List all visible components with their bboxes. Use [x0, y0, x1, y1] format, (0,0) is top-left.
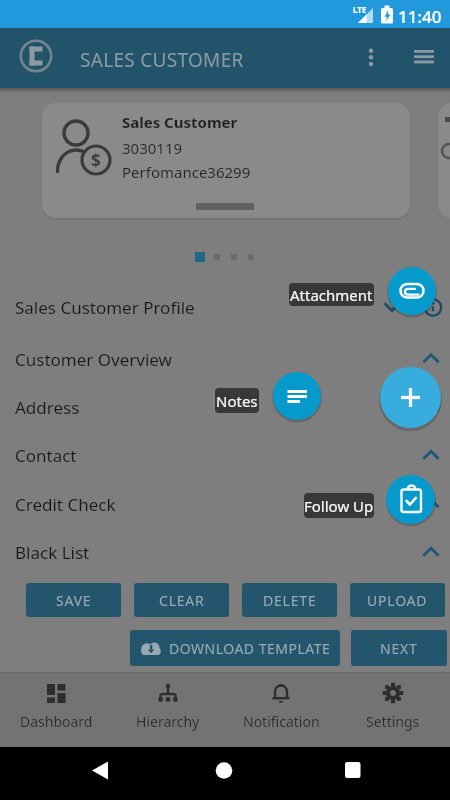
staticText: Customer Overview — [15, 348, 172, 371]
button[interactable]: Follow Up — [304, 493, 374, 518]
staticText: Hierarchy — [136, 712, 200, 731]
staticText: UPLOAD — [367, 591, 428, 610]
staticText: DOWNLOAD TEMPLATE — [169, 639, 331, 658]
staticText: Notification — [243, 712, 320, 731]
staticText: Settings — [366, 712, 420, 731]
button[interactable] — [333, 752, 373, 792]
button[interactable]: Notes — [215, 388, 259, 413]
button[interactable]: Dashboard — [0, 672, 112, 747]
button[interactable] — [358, 40, 384, 76]
button[interactable]: Contact — [0, 431, 450, 479]
staticText: Black List — [15, 541, 90, 564]
button[interactable]: Address — [0, 383, 450, 431]
staticText: Credit Check — [15, 493, 116, 516]
staticText: Perfomance36299 — [122, 162, 251, 182]
staticText: Attachment — [290, 285, 373, 305]
button[interactable]: DELETE — [242, 583, 337, 617]
button[interactable] — [380, 367, 441, 428]
button[interactable]: CLEAR — [134, 583, 229, 617]
button[interactable]: Black List — [0, 528, 450, 576]
button[interactable] — [205, 752, 245, 792]
button[interactable] — [273, 372, 321, 420]
button[interactable]: Hierarchy — [112, 672, 224, 747]
staticText: Sales Customer — [122, 112, 238, 132]
staticText: NEXT — [380, 639, 418, 658]
staticText: $ — [91, 149, 101, 172]
button[interactable]: Settings — [337, 672, 449, 747]
staticText: CLEAR — [159, 591, 205, 610]
button[interactable]: Notification — [225, 672, 337, 747]
staticText: Contact — [15, 444, 77, 467]
button[interactable]: UPLOAD — [350, 583, 445, 617]
button[interactable]: $ — [42, 103, 410, 218]
button[interactable]: NEXT — [351, 630, 447, 666]
staticText: Sales Customer Profile — [15, 296, 195, 319]
button[interactable] — [408, 40, 442, 76]
button[interactable]: Credit Check — [0, 480, 450, 528]
staticText: 11:40 — [398, 5, 442, 28]
staticText: Address — [15, 396, 80, 419]
staticText: DELETE — [263, 591, 317, 610]
button[interactable] — [80, 752, 120, 792]
staticText: LTE — [353, 4, 367, 15]
staticText: SALES CUSTOMER — [80, 47, 244, 73]
button[interactable]: SAVE — [26, 583, 121, 617]
staticText: Notes — [216, 391, 258, 411]
button[interactable]: Customer Overview — [0, 335, 450, 383]
button[interactable]: DOWNLOAD TEMPLATE — [130, 630, 340, 666]
staticText: Dashboard — [20, 712, 93, 731]
staticText: 3030119 — [122, 138, 183, 158]
button[interactable]: Attachment — [289, 283, 374, 306]
button[interactable] — [388, 267, 436, 315]
button[interactable]: Sales Customer Profile — [0, 283, 450, 331]
button[interactable] — [386, 475, 435, 524]
staticText: SAVE — [56, 591, 92, 610]
staticText: Follow Up — [304, 496, 374, 516]
